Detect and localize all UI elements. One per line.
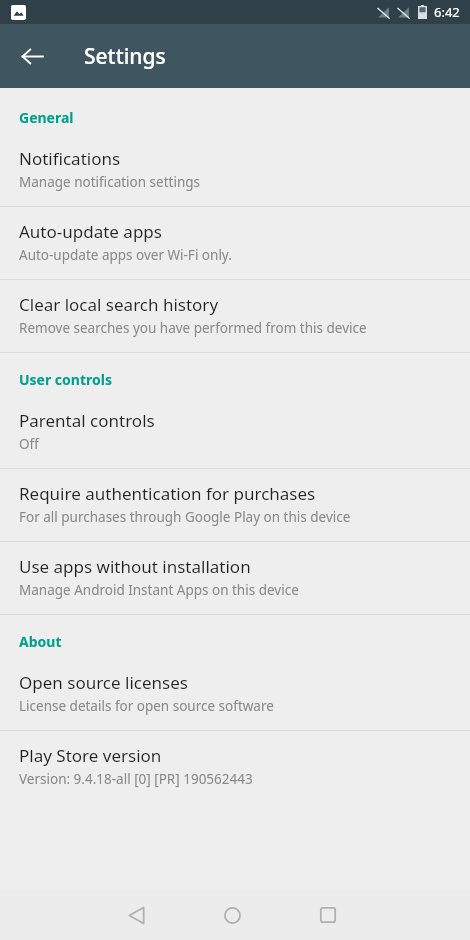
staticText: About [19,632,62,651]
button[interactable]: Auto-update apps [0,207,470,279]
button[interactable]: Notifications [0,134,470,206]
button[interactable]: Clear local search history [0,280,470,352]
button[interactable]: Home [184,890,280,940]
staticText: Clear local search history [19,293,219,316]
button[interactable]: Back [88,890,184,940]
staticText: 6:42 [434,3,460,21]
button[interactable]: Use apps without installation [0,542,470,614]
button[interactable]: Play Store version [0,731,470,803]
staticText: Version: 9.4.18-all [0] [PR] 190562443 [19,770,253,788]
staticText: Off [19,435,39,453]
button[interactable]: Parental controls [0,396,470,468]
staticText: Play Store version [19,744,162,767]
staticText: For all purchases through Google Play on… [19,508,351,526]
staticText: General [19,108,74,127]
staticText: User controls [19,370,112,389]
button[interactable]: Recent apps [280,890,376,940]
staticText: Auto-update apps [19,220,162,243]
staticText: Remove searches you have performed from … [19,319,367,337]
staticText: Manage Android Instant Apps on this devi… [19,581,299,599]
button[interactable]: Require authentication for purchases [0,469,470,541]
staticText: Use apps without installation [19,555,251,578]
staticText: Auto-update apps over Wi-Fi only. [19,246,232,264]
staticText: License details for open source software [19,697,274,715]
staticText: Require authentication for purchases [19,482,316,505]
staticText: Open source licenses [19,671,188,694]
button[interactable]: Open source licenses [0,658,470,730]
staticText: Settings [84,42,166,71]
staticText: Manage notification settings [19,173,201,191]
button[interactable]: Back [8,32,56,80]
staticText: Parental controls [19,409,155,432]
staticText: Notifications [19,147,121,170]
